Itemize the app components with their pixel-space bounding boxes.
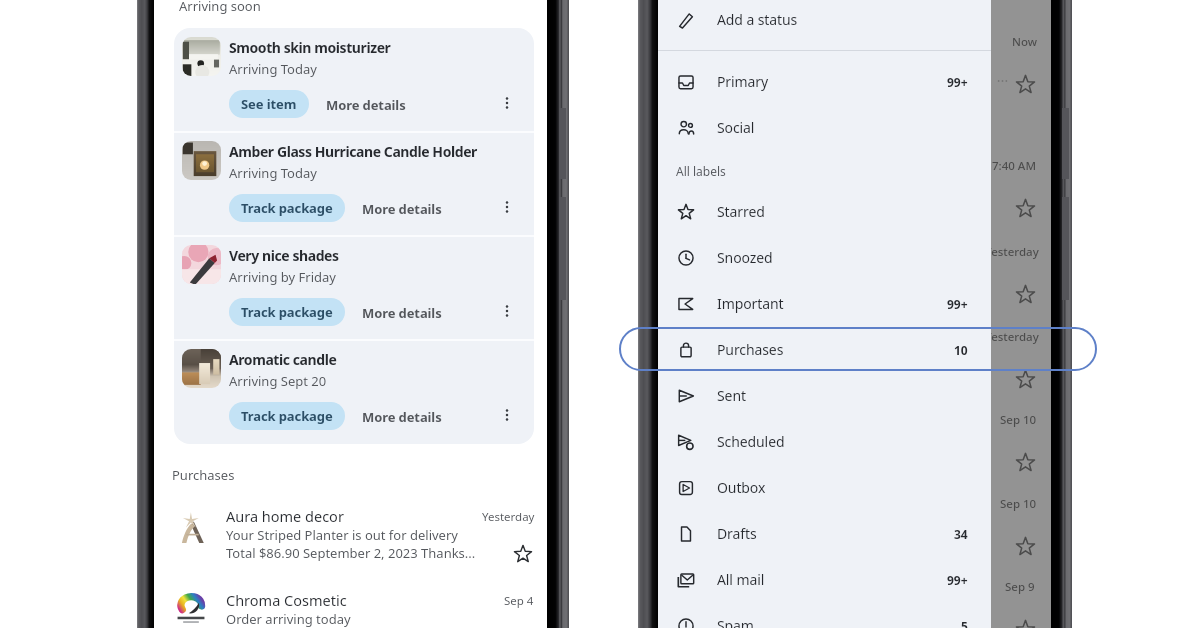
button[interactable]: More details bbox=[362, 304, 442, 322]
staticText: Now bbox=[1012, 34, 1038, 50]
button[interactable]: Track package bbox=[229, 194, 345, 222]
button[interactable]: Social bbox=[658, 105, 991, 151]
staticText: Spam bbox=[717, 616, 754, 628]
staticText: Yesterday bbox=[482, 509, 535, 525]
staticText: Very nice shades bbox=[229, 246, 339, 265]
button[interactable]: Star bbox=[1016, 453, 1035, 472]
button[interactable]: All mail bbox=[658, 557, 991, 603]
staticText: Sep 10 bbox=[1000, 496, 1037, 512]
staticText: 99+ bbox=[947, 572, 968, 588]
staticText: Sent bbox=[717, 386, 746, 405]
staticText: More details bbox=[362, 304, 442, 322]
staticText: Sep 4 bbox=[504, 593, 534, 609]
staticText: 99+ bbox=[947, 74, 968, 90]
staticText: Social bbox=[717, 118, 755, 137]
staticText: Arriving Today bbox=[229, 164, 317, 182]
button[interactable]: Star bbox=[1016, 620, 1035, 628]
staticText: See item bbox=[241, 95, 297, 113]
staticText: Sep 10 bbox=[1000, 412, 1037, 428]
staticText: 10 bbox=[954, 342, 968, 358]
staticText: Aura home decor bbox=[226, 506, 344, 526]
staticText: Yesterday bbox=[991, 244, 1039, 260]
staticText: Chroma Cosmetic bbox=[226, 590, 347, 610]
button[interactable]: Scheduled bbox=[658, 419, 991, 465]
button[interactable]: Smooth skin moisturizer bbox=[174, 28, 534, 132]
staticText: Outbox bbox=[717, 478, 766, 497]
button[interactable]: Aura home decor bbox=[154, 500, 547, 584]
button[interactable]: Primary bbox=[658, 59, 991, 105]
staticText: Track package bbox=[241, 407, 333, 425]
staticText: Amber Glass Hurricane Candle Holder bbox=[229, 142, 477, 161]
staticText: Aromatic candle bbox=[229, 350, 337, 369]
staticText: Purchases bbox=[717, 340, 784, 359]
staticText: 99+ bbox=[947, 296, 968, 312]
staticText: Track package bbox=[241, 199, 333, 217]
staticText: Arriving soon bbox=[179, 0, 261, 15]
button[interactable]: Star bbox=[1016, 199, 1035, 218]
staticText: Total $86.90 September 2, 2023 Thanks... bbox=[226, 544, 476, 562]
button[interactable]: Starred bbox=[658, 189, 991, 235]
button[interactable]: Purchases bbox=[658, 327, 991, 373]
button[interactable]: More details bbox=[326, 96, 406, 114]
staticText: Track package bbox=[241, 303, 333, 321]
staticText: Smooth skin moisturizer bbox=[229, 38, 391, 57]
button[interactable]: Drafts bbox=[658, 511, 991, 557]
staticText: Important bbox=[717, 294, 784, 313]
staticText: Arriving Sept 20 bbox=[229, 372, 327, 390]
button[interactable]: Very nice shades bbox=[174, 236, 534, 340]
button[interactable]: Outbox bbox=[658, 465, 991, 511]
staticText: Primary bbox=[717, 72, 769, 91]
button[interactable]: Track package bbox=[229, 298, 345, 326]
staticText: Arriving Today bbox=[229, 60, 317, 78]
staticText: Snoozed bbox=[717, 248, 773, 267]
staticText: 34 bbox=[954, 526, 968, 542]
button[interactable]: More options bbox=[494, 90, 520, 116]
button[interactable]: More options bbox=[494, 402, 520, 428]
button[interactable]: See item bbox=[229, 90, 309, 118]
button[interactable]: Amber Glass Hurricane Candle Holder bbox=[174, 132, 534, 236]
staticText: Add a status bbox=[717, 10, 798, 29]
staticText: Arriving by Friday bbox=[229, 268, 336, 286]
staticText: Starred bbox=[717, 202, 765, 221]
button[interactable]: Add a status bbox=[658, 0, 991, 43]
staticText: Sep 9 bbox=[1005, 579, 1035, 595]
button[interactable]: More options bbox=[494, 298, 520, 324]
staticText: More details bbox=[326, 96, 406, 114]
staticText: Yesterday bbox=[991, 329, 1039, 345]
staticText: 5 bbox=[961, 618, 968, 628]
button[interactable]: More details bbox=[362, 200, 442, 218]
button[interactable]: Star bbox=[1016, 285, 1035, 304]
staticText: Purchases bbox=[172, 466, 235, 484]
button[interactable]: Spam bbox=[658, 603, 991, 628]
button[interactable]: More details bbox=[362, 408, 442, 426]
staticText: More details bbox=[362, 408, 442, 426]
button[interactable]: Star bbox=[514, 545, 532, 563]
button[interactable]: Star bbox=[1016, 370, 1035, 389]
staticText: Scheduled bbox=[717, 432, 785, 451]
staticText: Drafts bbox=[717, 524, 757, 543]
staticText: Your Striped Planter is out for delivery bbox=[226, 526, 458, 544]
button[interactable]: Chroma Cosmetic bbox=[154, 584, 547, 628]
staticText: More details bbox=[362, 200, 442, 218]
button[interactable]: Important bbox=[658, 281, 991, 327]
button[interactable]: Snoozed bbox=[658, 235, 991, 281]
staticText: Order arriving today bbox=[226, 610, 351, 628]
button[interactable]: More options bbox=[494, 194, 520, 220]
button[interactable]: Sent bbox=[658, 373, 991, 419]
button[interactable]: Star bbox=[1016, 537, 1035, 556]
button[interactable]: Star bbox=[1016, 75, 1035, 94]
button[interactable]: Track package bbox=[229, 402, 345, 430]
staticText: All mail bbox=[717, 570, 765, 589]
button[interactable]: Aromatic candle bbox=[174, 340, 534, 444]
staticText: 7:40 AM bbox=[992, 158, 1036, 174]
staticText: All labels bbox=[676, 163, 726, 179]
